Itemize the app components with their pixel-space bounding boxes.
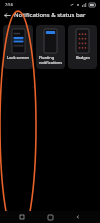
button[interactable]: Recents bbox=[16, 211, 28, 223]
button[interactable]: Lock screen bbox=[3, 25, 33, 69]
button[interactable]: Home bbox=[44, 211, 56, 223]
staticText: 7:56 bbox=[5, 2, 13, 7]
staticText: Floating notifications bbox=[39, 55, 63, 65]
staticText: Notifications & status bar bbox=[14, 11, 86, 19]
button[interactable]: Back bbox=[72, 211, 84, 223]
button[interactable]: Back bbox=[0, 8, 14, 22]
staticText: Lock screen bbox=[7, 55, 30, 60]
button[interactable]: Floating notifications bbox=[36, 25, 65, 69]
button[interactable]: Badges bbox=[68, 25, 97, 69]
staticText: Badges bbox=[76, 55, 90, 60]
